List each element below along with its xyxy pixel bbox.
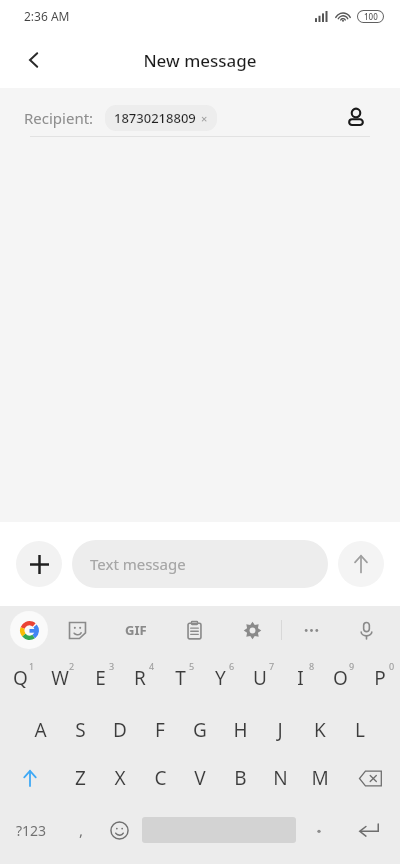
button[interactable]: J	[260, 706, 300, 754]
button[interactable]: T	[160, 654, 200, 702]
staticText: K	[314, 717, 326, 743]
button[interactable]: More options	[282, 608, 340, 652]
button[interactable]: M	[300, 754, 340, 802]
staticText: N	[273, 765, 288, 791]
button[interactable]: F	[140, 706, 180, 754]
staticText: Z	[75, 765, 86, 791]
button[interactable]: Stickers	[48, 608, 107, 652]
staticText: 1	[29, 660, 35, 672]
staticText: E	[95, 665, 106, 691]
button[interactable]: Back	[12, 38, 56, 82]
staticText: 4	[149, 660, 155, 672]
button[interactable]: Y	[200, 654, 240, 702]
staticText: R	[134, 665, 146, 691]
staticText: H	[233, 717, 248, 743]
staticText: ×	[201, 111, 208, 126]
button[interactable]: ,	[62, 806, 100, 854]
staticText: P	[374, 665, 386, 691]
button[interactable]: B	[220, 754, 260, 802]
button[interactable]: K	[300, 706, 340, 754]
button[interactable]: ?123	[0, 806, 62, 854]
button[interactable]: P	[360, 654, 400, 702]
staticText: ?123	[16, 821, 47, 840]
button[interactable]: U	[240, 654, 280, 702]
button[interactable]: Add attachment	[16, 541, 62, 587]
staticText: A	[34, 717, 47, 743]
staticText: C	[154, 765, 167, 791]
button[interactable]: Choose contact	[336, 98, 376, 138]
button[interactable]	[300, 806, 338, 854]
staticText: B	[234, 765, 247, 791]
staticText: M	[311, 765, 329, 791]
staticText: O	[333, 665, 348, 691]
staticText: L	[355, 717, 365, 743]
button[interactable]: Enter	[338, 806, 400, 854]
staticText: 2	[69, 660, 75, 672]
staticText: 7	[269, 660, 275, 672]
staticText: Y	[215, 665, 226, 691]
staticText: Text message	[90, 554, 186, 574]
staticText: S	[75, 717, 86, 743]
staticText: 9	[349, 660, 355, 672]
button[interactable]: L	[340, 706, 380, 754]
button[interactable]: G	[180, 706, 220, 754]
staticText: 2:36 AM	[24, 8, 70, 24]
button[interactable]: Backspace	[340, 754, 400, 802]
button[interactable]: W	[40, 654, 80, 702]
button[interactable]: Clipboard	[165, 608, 223, 652]
staticText: 100	[364, 11, 378, 22]
staticText: X	[114, 765, 126, 791]
staticText: F	[155, 717, 165, 743]
staticText: T	[175, 665, 186, 691]
staticText: W	[51, 665, 69, 691]
button[interactable]: C	[140, 754, 180, 802]
staticText: 0	[389, 660, 395, 672]
staticText: I	[297, 665, 304, 691]
button[interactable]: Shift	[0, 754, 60, 802]
staticText: J	[277, 717, 283, 743]
button[interactable]: Z	[60, 754, 100, 802]
staticText: 8	[309, 660, 315, 672]
button[interactable]: Emoji	[100, 806, 138, 854]
button[interactable]: GIF	[107, 608, 165, 652]
staticText: ,	[79, 820, 84, 840]
staticText: 18730218809	[114, 109, 196, 127]
button[interactable]: Q	[0, 654, 40, 702]
button[interactable]: X	[100, 754, 140, 802]
button[interactable]: I	[280, 654, 320, 702]
button[interactable]: R	[120, 654, 160, 702]
staticText: Recipient:	[24, 108, 94, 128]
staticText: New message	[143, 49, 257, 72]
staticText: D	[113, 717, 127, 743]
button[interactable]: H	[220, 706, 260, 754]
staticText: 3	[109, 660, 115, 672]
button[interactable]: S	[60, 706, 100, 754]
button[interactable]: 18730218809	[105, 105, 217, 131]
button[interactable]: E	[80, 654, 120, 702]
button[interactable]: Send	[338, 541, 384, 587]
button[interactable]: O	[320, 654, 360, 702]
button[interactable]: Text message	[72, 540, 328, 588]
staticText: GIF	[125, 621, 147, 639]
button[interactable]: V	[180, 754, 220, 802]
staticText: 6	[229, 660, 235, 672]
button[interactable]: N	[260, 754, 300, 802]
staticText: V	[194, 765, 206, 791]
staticText: G	[193, 717, 207, 743]
button[interactable]: D	[100, 706, 140, 754]
button[interactable]: Voice input	[340, 608, 392, 652]
staticText: Q	[13, 665, 28, 691]
button[interactable]: Settings	[223, 608, 281, 652]
button[interactable]: A	[20, 706, 60, 754]
staticText: 5	[189, 660, 195, 672]
staticText: U	[253, 665, 267, 691]
button[interactable]: Google search	[10, 611, 48, 649]
